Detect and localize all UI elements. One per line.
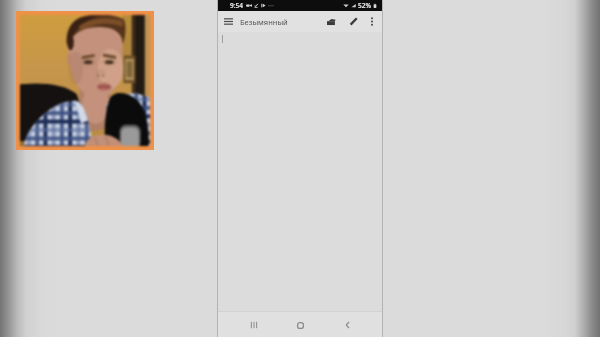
button[interactable]: Back [335, 313, 359, 337]
button[interactable]: Navigation menu [218, 11, 238, 32]
button[interactable]: More options [363, 11, 380, 32]
button[interactable]: Recent apps [241, 313, 265, 337]
staticText: 9:54 [230, 1, 243, 10]
button[interactable]: Home [288, 313, 312, 337]
button[interactable]: Edit [344, 11, 363, 32]
staticText: Безымянный [240, 17, 288, 27]
button[interactable]: Archive [319, 11, 344, 32]
staticText: 52% [358, 1, 371, 10]
